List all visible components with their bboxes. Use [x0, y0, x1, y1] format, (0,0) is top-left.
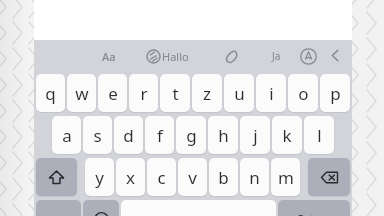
button[interactable]: v	[178, 158, 207, 196]
button[interactable]: n	[240, 158, 269, 196]
staticText: z	[203, 82, 211, 105]
button[interactable]: i	[256, 74, 286, 112]
button[interactable]: w	[67, 74, 96, 112]
button[interactable]: y	[85, 158, 114, 196]
staticText: a	[62, 124, 72, 147]
staticText: e	[108, 82, 118, 105]
button[interactable]: b	[209, 158, 238, 196]
button[interactable]: Return	[278, 200, 350, 216]
button[interactable]: q	[36, 74, 65, 112]
staticText: s	[93, 124, 102, 147]
staticText: q	[45, 82, 56, 105]
staticText: b	[218, 166, 229, 189]
staticText: l	[317, 124, 322, 147]
button[interactable]: e	[98, 74, 127, 112]
staticText: c	[157, 166, 166, 189]
staticText: u	[234, 82, 245, 105]
button[interactable]: Numbers	[36, 200, 81, 216]
button[interactable]: k	[272, 116, 302, 154]
staticText: Hallo	[162, 49, 189, 64]
button[interactable]: Shift	[36, 158, 77, 196]
staticText: o	[298, 82, 309, 105]
button[interactable]: s	[83, 116, 112, 154]
staticText: j	[253, 124, 258, 147]
staticText: i	[269, 82, 274, 105]
staticText: h	[218, 124, 229, 147]
button[interactable]: r	[129, 74, 158, 112]
staticText: d	[123, 124, 134, 147]
button[interactable]: a	[52, 116, 81, 154]
staticText: x	[126, 166, 135, 189]
staticText: k	[282, 124, 292, 147]
button[interactable]: t	[160, 74, 190, 112]
button[interactable]: z	[192, 74, 222, 112]
button[interactable]: u	[224, 74, 254, 112]
button[interactable]: Attach file	[221, 45, 243, 67]
staticText: t	[172, 82, 179, 105]
staticText: g	[186, 124, 197, 147]
button[interactable]: Text formatting	[96, 44, 122, 68]
staticText: Ja	[272, 49, 281, 63]
button[interactable]: Stickers	[146, 45, 189, 67]
button[interactable]: l	[304, 116, 334, 154]
staticText: y	[95, 166, 104, 189]
staticText: Aa	[102, 49, 116, 64]
button[interactable]: Collapse	[324, 44, 346, 66]
button[interactable]: f	[145, 116, 174, 154]
staticText: v	[188, 166, 197, 189]
button[interactable]: x	[116, 158, 145, 196]
staticText: w	[75, 82, 89, 105]
staticText: p	[330, 82, 341, 105]
staticText: n	[249, 166, 260, 189]
button[interactable]: c	[147, 158, 176, 196]
button[interactable]: d	[114, 116, 143, 154]
button[interactable]: o	[288, 74, 318, 112]
button[interactable]: g	[176, 116, 206, 154]
staticText: m	[278, 166, 294, 189]
staticText: r	[140, 82, 148, 105]
button[interactable]: Emoji	[83, 200, 119, 216]
button[interactable]: p	[320, 74, 350, 112]
button[interactable]: Suggestion Ja	[264, 44, 288, 68]
button[interactable]: h	[208, 116, 238, 154]
staticText: Return	[298, 212, 330, 216]
button[interactable]: j	[240, 116, 270, 154]
button[interactable]: Markup	[296, 44, 320, 68]
button[interactable]: Backspace	[308, 158, 350, 196]
button[interactable]: m	[271, 158, 300, 196]
staticText: f	[157, 124, 163, 147]
